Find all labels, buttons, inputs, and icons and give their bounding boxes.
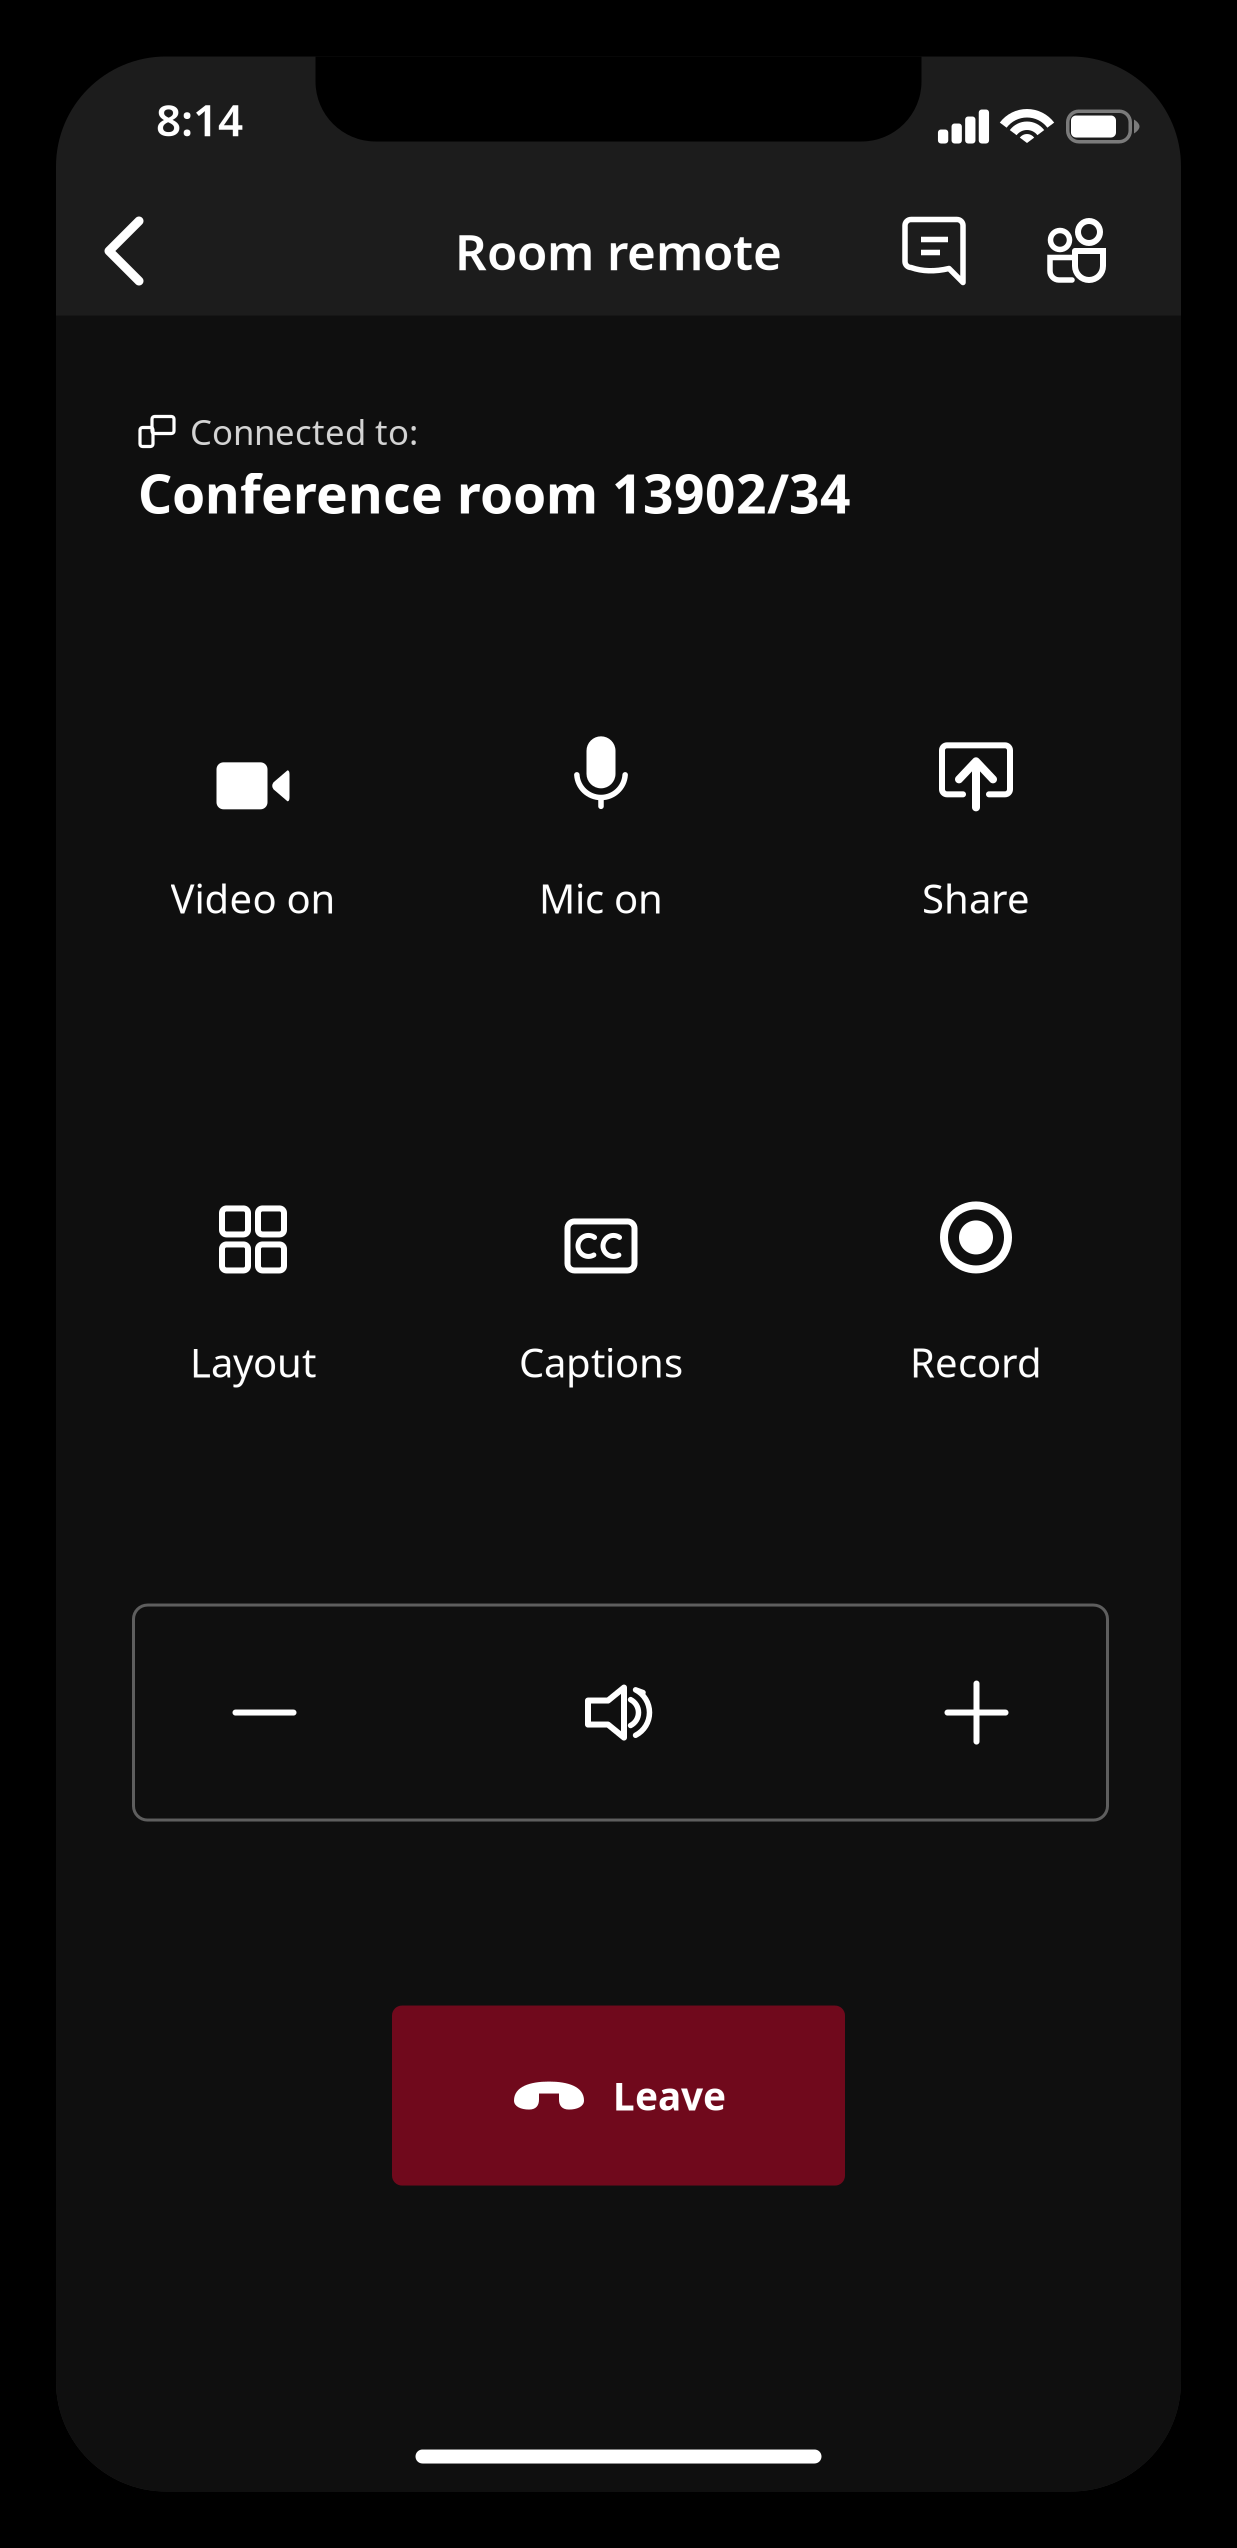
button[interactable]: Leave	[392, 2006, 845, 2186]
staticText: Conference room 13902/34	[138, 457, 851, 528]
button[interactable]: Captions	[427, 1199, 775, 1388]
button[interactable]: Back	[74, 201, 174, 301]
staticText: Share	[922, 871, 1030, 924]
button[interactable]: Record	[775, 1199, 1177, 1388]
staticText: Record	[910, 1335, 1042, 1388]
staticText: Room remote	[455, 218, 782, 284]
staticText: 8:14	[156, 90, 243, 148]
button[interactable]: Chat	[884, 201, 984, 301]
button[interactable]: Share	[775, 735, 1177, 924]
staticText: Mic on	[539, 871, 663, 924]
button[interactable]: Volume down	[132, 1604, 397, 1822]
button[interactable]: Participants	[1027, 201, 1127, 301]
button[interactable]: Layout	[79, 1199, 427, 1388]
staticText: Video on	[170, 871, 335, 924]
button[interactable]: Volume up	[844, 1604, 1109, 1822]
button[interactable]: Mic on	[427, 735, 775, 924]
staticText: Connected to:	[190, 408, 418, 454]
staticText: Leave	[613, 2070, 726, 2121]
staticText: Captions	[519, 1335, 683, 1388]
staticText: Layout	[190, 1335, 316, 1388]
button[interactable]: Video on	[79, 735, 427, 924]
